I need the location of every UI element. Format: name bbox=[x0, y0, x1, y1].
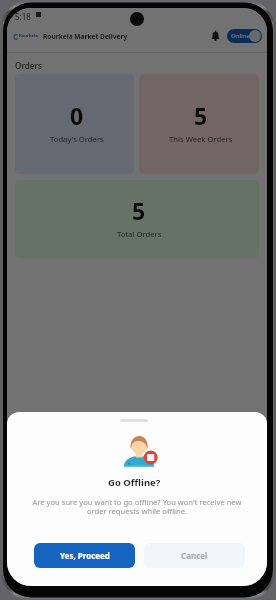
staticText: Orders bbox=[15, 60, 42, 71]
staticText: 0 bbox=[70, 100, 84, 131]
button[interactable]: 5 bbox=[139, 74, 259, 174]
button[interactable]: Online toggle bbox=[227, 29, 262, 43]
staticText: This Week Orders bbox=[169, 134, 233, 144]
button[interactable]: 5 bbox=[15, 180, 259, 258]
button[interactable]: Cancel bbox=[144, 543, 245, 568]
staticText: Yes, Proceed bbox=[60, 550, 110, 561]
button[interactable]: Notifications bbox=[208, 29, 222, 43]
staticText: Are you sure you want to go offline? You… bbox=[25, 497, 249, 517]
staticText: Total Orders bbox=[117, 229, 162, 239]
button[interactable]: 0 bbox=[15, 74, 134, 174]
staticText: 5 bbox=[132, 195, 146, 226]
staticText: Rourkela bbox=[19, 33, 38, 39]
staticText: 5:18 bbox=[15, 11, 31, 22]
staticText: Rourkela Market Delivery bbox=[43, 32, 128, 41]
button[interactable]: Yes, Proceed bbox=[34, 543, 135, 568]
staticText: Online bbox=[231, 32, 250, 40]
staticText: Go Offline? bbox=[108, 476, 161, 489]
staticText: Today's Orders bbox=[50, 134, 104, 144]
staticText: 5 bbox=[194, 100, 208, 131]
staticText: Cancel bbox=[181, 550, 208, 561]
